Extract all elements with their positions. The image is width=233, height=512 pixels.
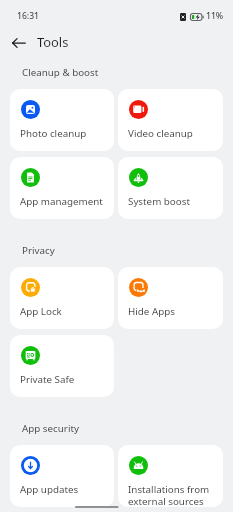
staticText: Installations from external sources [128, 483, 219, 507]
button[interactable]: Private Safe [10, 335, 114, 397]
button[interactable]: Video cleanup [118, 89, 223, 151]
staticText: Hide Apps [128, 305, 175, 318]
button[interactable]: Hide Apps [118, 267, 223, 329]
staticText: Private Safe [20, 373, 75, 386]
staticText: Cleanup & boost [22, 66, 99, 79]
button[interactable]: System boost [118, 157, 223, 219]
staticText: App security [22, 422, 79, 435]
staticText: Photo cleanup [20, 127, 87, 140]
staticText: 16:31 [17, 10, 40, 22]
button[interactable]: Photo cleanup [10, 89, 114, 151]
button[interactable]: App management [10, 157, 114, 219]
staticText: 11% [206, 10, 224, 22]
staticText: Tools [37, 33, 69, 51]
button[interactable]: Installations from external sources [118, 445, 223, 507]
staticText: App updates [20, 483, 79, 496]
button[interactable]: Back [6, 30, 31, 55]
button[interactable]: App Lock [10, 267, 114, 329]
staticText: Video cleanup [128, 127, 193, 140]
staticText: App Lock [20, 305, 62, 318]
staticText: System boost [128, 195, 190, 208]
staticText: Privacy [22, 244, 55, 257]
staticText: App management [20, 195, 103, 208]
button[interactable]: App updates [10, 445, 114, 507]
